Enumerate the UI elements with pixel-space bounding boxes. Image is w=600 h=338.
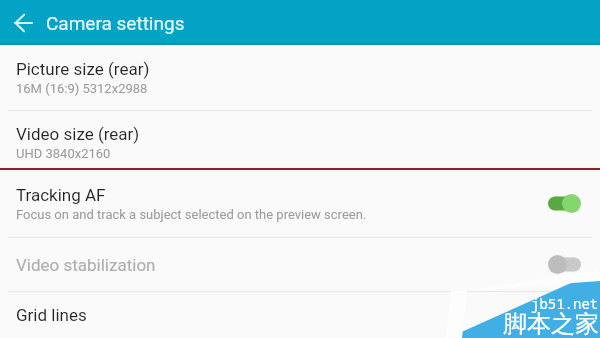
- staticText: Video stabilization: [16, 255, 156, 275]
- button[interactable]: Grid lines: [0, 292, 600, 338]
- button[interactable]: Navigate up: [0, 0, 45, 45]
- button[interactable]: Switch on: [548, 194, 581, 213]
- button[interactable]: Tracking AF: [0, 170, 600, 237]
- button[interactable]: Video size (rear): [0, 111, 600, 168]
- button[interactable]: Picture size (rear): [0, 45, 600, 110]
- button[interactable]: Video stabilization: [0, 238, 600, 291]
- staticText: 16M (16:9) 5312x2988: [16, 81, 148, 96]
- staticText: UHD 3840x2160: [16, 146, 111, 161]
- staticText: 脚本之家: [503, 309, 599, 338]
- staticText: Tracking AF: [16, 185, 106, 205]
- staticText: Picture size (rear): [16, 59, 150, 79]
- staticText: jb51.net: [531, 294, 599, 313]
- staticText: Focus on and track a subject selected on…: [16, 207, 367, 222]
- staticText: Grid lines: [16, 305, 87, 325]
- staticText: Camera settings: [46, 12, 185, 34]
- button[interactable]: Switch off: [548, 255, 581, 274]
- staticText: Video size (rear): [16, 124, 140, 144]
